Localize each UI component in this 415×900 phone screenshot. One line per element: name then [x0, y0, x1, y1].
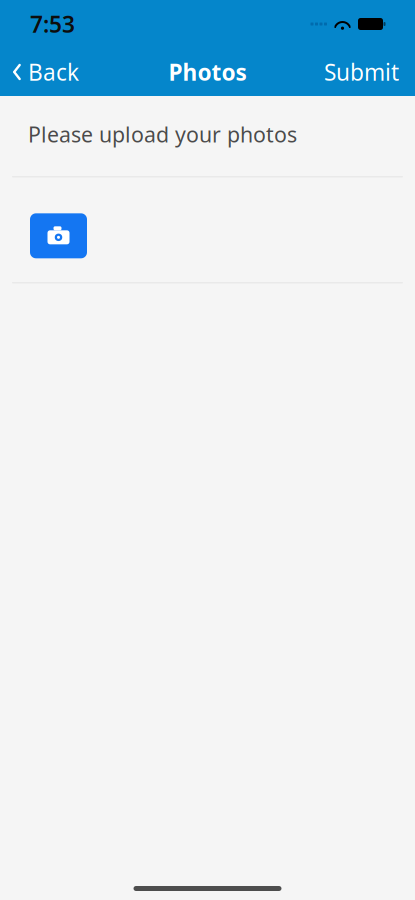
button[interactable]: Back [0, 47, 79, 97]
staticText: Please upload your photos [28, 120, 297, 148]
button[interactable]: Submit [324, 47, 415, 97]
staticText: 7:53 [30, 9, 75, 39]
staticText: Back [28, 57, 79, 87]
staticText: Photos [168, 57, 246, 87]
button[interactable]: Take photo [30, 213, 87, 258]
staticText: Submit [324, 57, 399, 87]
